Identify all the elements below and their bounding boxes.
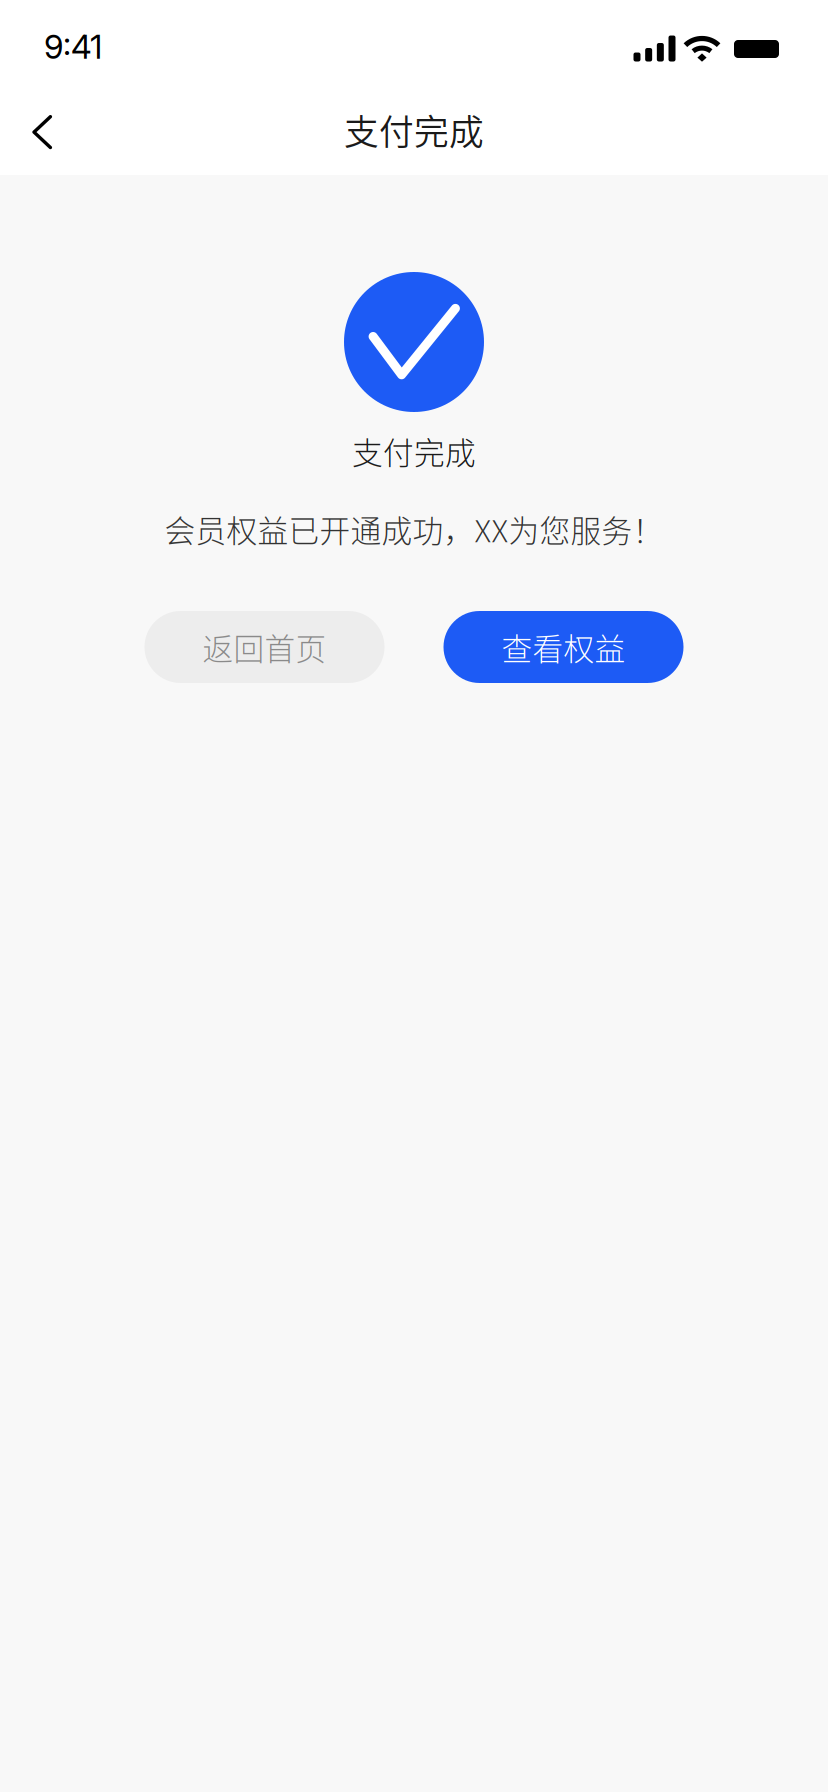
- button[interactable]: 返回: [0, 88, 88, 175]
- button[interactable]: 返回首页: [144, 611, 384, 683]
- staticText: 9:41: [44, 27, 102, 67]
- staticText: 支付完成: [344, 105, 484, 155]
- staticText: 返回首页: [202, 625, 326, 669]
- staticText: 查看权益: [501, 625, 625, 669]
- staticText: 支付完成: [352, 429, 476, 473]
- button[interactable]: 查看权益: [443, 611, 683, 683]
- staticText: 会员权益已开通成功，XX为您服务！: [164, 507, 663, 551]
